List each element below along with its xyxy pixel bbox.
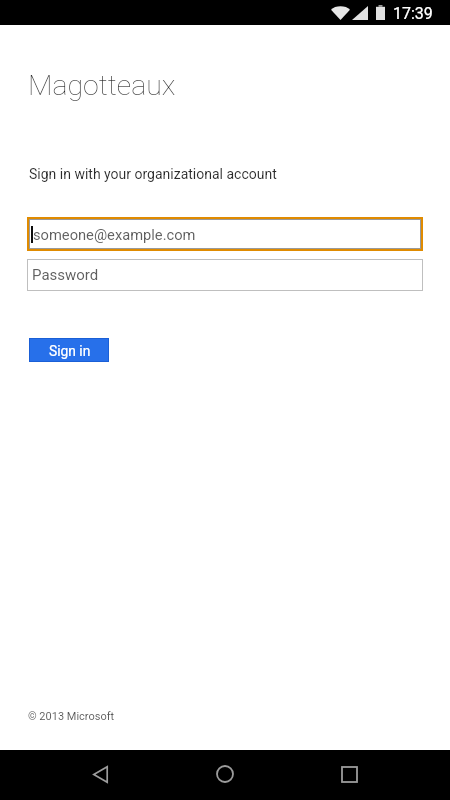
button[interactable]: Back bbox=[78, 752, 122, 796]
button[interactable]: Home bbox=[203, 752, 247, 796]
button[interactable]: Recent apps bbox=[327, 752, 371, 796]
button[interactable]: Sign in bbox=[30, 339, 108, 361]
button[interactable]: Password bbox=[27, 259, 423, 291]
staticText: Magotteaux bbox=[28, 69, 176, 102]
staticText: © 2013 Microsoft bbox=[28, 710, 115, 723]
button[interactable]: someone@example.com bbox=[29, 219, 421, 249]
staticText: Password bbox=[32, 266, 99, 284]
staticText: Sign in with your organizational account bbox=[29, 166, 277, 182]
staticText: someone@example.com bbox=[33, 226, 196, 243]
staticText: 17:39 bbox=[393, 4, 433, 23]
staticText: Sign in bbox=[49, 343, 91, 359]
